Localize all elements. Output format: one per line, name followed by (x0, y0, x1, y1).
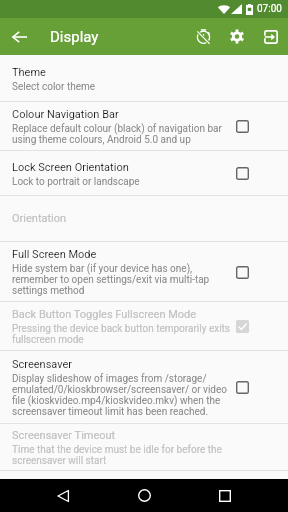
staticText: Lock to portrait or landscape (12, 176, 140, 187)
button[interactable]: Colour Navigation Bar (0, 102, 288, 150)
staticText: Screensaver (12, 357, 73, 371)
staticText: fullscreen mode (12, 334, 84, 345)
staticText: file (kioskvideo.mp4/kioskvideo.mkv) whe… (12, 395, 221, 406)
button[interactable]: Recent apps (195, 479, 255, 512)
staticText: Replace default colour (black) of naviga… (12, 123, 222, 134)
staticText: 07:00 (257, 3, 282, 15)
staticText: Lock Screen Orientation (12, 160, 129, 174)
button[interactable]: Theme (0, 55, 288, 101)
button[interactable]: Screensaver (0, 351, 288, 423)
staticText: Full Screen Mode (12, 247, 97, 261)
staticText: Hide system bar (if your device has one)… (12, 263, 193, 274)
staticText: Colour Navigation Bar (12, 107, 119, 121)
staticText: Time that the device must be idle for be… (12, 444, 222, 455)
button[interactable]: Exit (254, 18, 288, 55)
button[interactable]: Home (114, 479, 174, 512)
staticText: remember to open settings/exit via multi… (12, 274, 210, 285)
staticText: Display (50, 28, 99, 46)
button[interactable]: Back (33, 479, 93, 512)
button[interactable]: Lock Screen Orientation (0, 151, 288, 195)
staticText: screensaver timeout limit has been reach… (12, 406, 209, 417)
button[interactable]: Disable screensaver timer (186, 18, 220, 55)
staticText: Orientation (12, 212, 67, 225)
staticText: using theme colours, Android 5.0 and up (12, 134, 191, 145)
button[interactable]: Navigate up (0, 18, 38, 55)
button[interactable]: Back Button Toggles Fullscreen Mode (0, 302, 288, 350)
staticText: Theme (12, 65, 46, 79)
button[interactable]: Settings (220, 18, 254, 55)
staticText: screensaver will start (12, 455, 107, 466)
staticText: Screensaver Timeout (12, 428, 116, 442)
staticText: emulated/0/kioskbrowser/screensaver/ or … (12, 384, 227, 395)
staticText: settings method (12, 285, 85, 296)
staticText: Display slideshow of images from /storag… (12, 373, 207, 384)
staticText: Select color theme (12, 81, 96, 92)
button[interactable]: Full Screen Mode (0, 242, 288, 301)
button[interactable]: Screensaver Timeout (0, 424, 288, 470)
staticText: Pressing the device back button temporar… (12, 323, 231, 334)
staticText: Back Button Toggles Fullscreen Mode (12, 307, 197, 321)
